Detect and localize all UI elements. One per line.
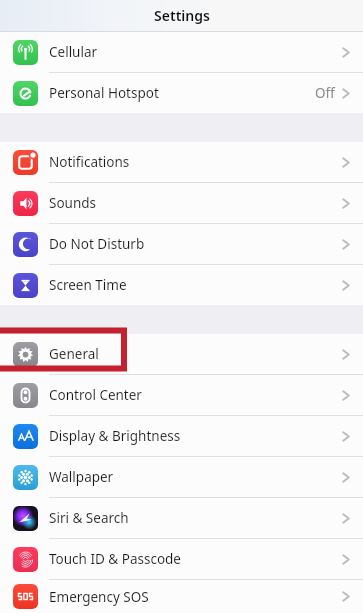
staticText: Cellular [49, 43, 342, 61]
staticText: Screen Time [49, 276, 342, 294]
button[interactable]: Display & Brightness [0, 416, 363, 457]
button[interactable]: Touch ID & Passcode [0, 539, 363, 580]
staticText: Notifications [49, 153, 342, 171]
staticText: Settings [154, 6, 210, 25]
button[interactable]: Siri & Search [0, 498, 363, 539]
button[interactable]: General [0, 334, 363, 375]
staticText: General [49, 345, 342, 363]
staticText: Display & Brightness [49, 427, 342, 445]
staticText: Wallpaper [49, 468, 342, 486]
button[interactable]: Wallpaper [0, 457, 363, 498]
staticText: Touch ID & Passcode [49, 550, 342, 568]
staticText: Emergency SOS [49, 588, 342, 606]
staticText: Personal Hotspot [49, 84, 315, 102]
staticText: Control Center [49, 386, 342, 404]
button[interactable]: Screen Time [0, 265, 363, 305]
button[interactable]: Sounds [0, 183, 363, 224]
button[interactable]: Do Not Disturb [0, 224, 363, 265]
staticText: Sounds [49, 194, 342, 212]
staticText: Off [315, 84, 335, 102]
button[interactable]: Emergency SOS [0, 580, 363, 613]
button[interactable]: Personal Hotspot [0, 73, 363, 113]
staticText: Siri & Search [49, 509, 342, 527]
button[interactable]: Control Center [0, 375, 363, 416]
button[interactable]: Notifications [0, 142, 363, 183]
button[interactable]: Cellular [0, 32, 363, 73]
staticText: Do Not Disturb [49, 235, 342, 253]
